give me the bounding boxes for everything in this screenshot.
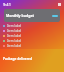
staticText: Item label	[7, 29, 22, 33]
staticText: Item label	[7, 34, 22, 38]
staticText: Item label	[7, 44, 22, 48]
staticText: Item label	[7, 24, 22, 28]
button[interactable]: Item label	[3, 24, 61, 28]
staticText: Monthly budget	[6, 13, 35, 18]
button[interactable]: Item label	[3, 44, 61, 48]
staticText: Package delivered	[3, 57, 32, 61]
staticText: Item label	[7, 39, 22, 43]
button[interactable]: Monthly budget	[4, 9, 60, 22]
button[interactable]: Item label	[3, 29, 61, 33]
button[interactable]: Item label	[3, 34, 61, 38]
staticText: 9:41	[3, 2, 11, 7]
button[interactable]: Item label	[3, 39, 61, 43]
